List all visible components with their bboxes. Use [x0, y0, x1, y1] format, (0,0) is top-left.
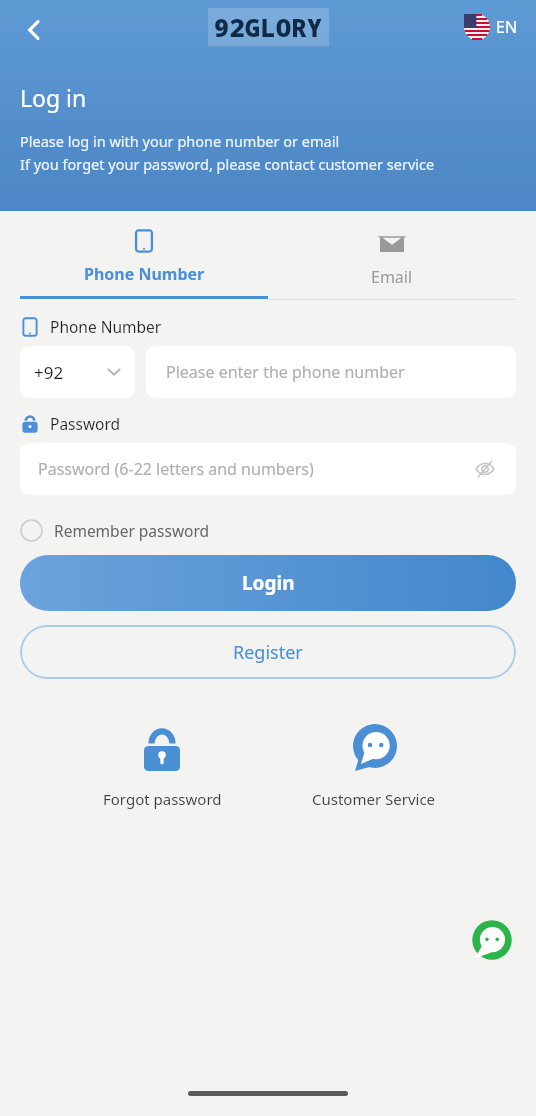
button[interactable]: Customer Service — [268, 723, 480, 809]
staticText: Register — [233, 640, 303, 665]
button[interactable]: Remember password — [20, 519, 218, 542]
button[interactable]: +92 — [20, 346, 135, 398]
staticText: Phone Number — [84, 263, 205, 285]
button[interactable]: Phone Number — [20, 217, 268, 299]
staticText: EN — [496, 16, 518, 38]
staticText: Email — [371, 266, 413, 288]
staticText: +92 — [34, 361, 64, 384]
button[interactable]: Login — [20, 555, 516, 611]
button[interactable]: Register — [20, 625, 516, 679]
button[interactable]: Forgot password — [56, 723, 268, 809]
staticText: Password (6-22 letters and numbers) — [38, 458, 314, 480]
staticText: Remember password — [54, 520, 210, 541]
button[interactable]: Email — [268, 217, 516, 300]
staticText: 92GLORY — [214, 10, 323, 44]
button[interactable]: EN — [460, 10, 522, 44]
button[interactable]: Show password — [472, 456, 498, 482]
staticText: Please enter the phone number — [166, 361, 405, 383]
staticText: Please log in with your phone number or … — [20, 131, 340, 151]
staticText: Login — [242, 570, 295, 596]
staticText: Password — [50, 413, 121, 434]
button[interactable]: Please enter the phone number — [146, 346, 516, 398]
staticText: Forgot password — [103, 789, 222, 809]
staticText: Customer Service — [312, 789, 436, 809]
staticText: If you forget your password, please cont… — [20, 154, 435, 174]
button[interactable]: Customer support chat — [468, 916, 516, 964]
button[interactable]: Back — [10, 6, 58, 54]
staticText: Phone Number — [50, 316, 162, 337]
button[interactable]: Password (6-22 letters and numbers) — [20, 443, 516, 495]
staticText: Log in — [20, 82, 87, 113]
